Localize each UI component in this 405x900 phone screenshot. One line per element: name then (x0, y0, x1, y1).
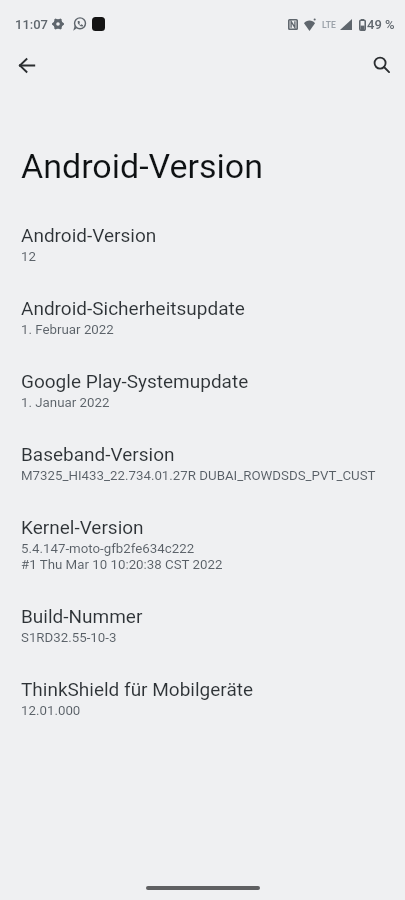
staticText: Build-Nummer (21, 605, 143, 627)
button[interactable]: Google Play-Systemupdate (0, 367, 405, 440)
button[interactable]: Baseband-Version (0, 440, 405, 513)
staticText: 1. Februar 2022 (21, 322, 114, 338)
staticText: Kernel-Version (21, 516, 144, 538)
staticText: Android-Version (21, 146, 264, 186)
button[interactable]: Kernel-Version (0, 513, 405, 602)
staticText: Android-Sicherheitsupdate (21, 297, 245, 319)
button[interactable]: Android-Version (0, 221, 405, 294)
staticText: Baseband-Version (21, 443, 175, 465)
staticText: 49 % (367, 17, 395, 32)
button[interactable]: Back (11, 49, 43, 81)
staticText: M7325_HI433_22.734.01.27R DUBAI_ROWDSDS_… (21, 468, 376, 484)
staticText: Android-Version (21, 224, 157, 246)
staticText: S1RD32.55-10-3 (21, 630, 117, 646)
staticText: LTE (322, 20, 336, 30)
button[interactable]: Search (366, 49, 398, 81)
button[interactable]: Build-Nummer (0, 602, 405, 675)
staticText: 5.4.147-moto-gfb2fe634c222 (21, 541, 195, 557)
staticText: Google Play-Systemupdate (21, 370, 249, 392)
staticText: 12.01.000 (21, 703, 81, 719)
staticText: ThinkShield für Mobilgeräte (21, 678, 254, 700)
button[interactable]: Android-Sicherheitsupdate (0, 294, 405, 367)
staticText: 11:07 (15, 17, 49, 32)
staticText: 12 (21, 249, 36, 265)
button[interactable]: ThinkShield für Mobilgeräte (0, 675, 405, 748)
staticText: 1. Januar 2022 (21, 395, 110, 411)
staticText: #1 Thu Mar 10 10:20:38 CST 2022 (21, 557, 223, 573)
